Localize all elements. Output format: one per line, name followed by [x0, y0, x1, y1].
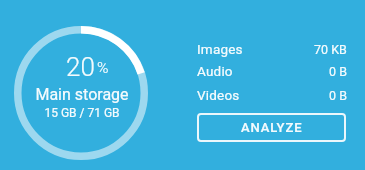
other: Storage used: 20 percent — [14, 26, 148, 160]
staticText: Main storage — [0, 85, 164, 104]
staticText: Videos — [197, 87, 240, 103]
button[interactable]: Images — [197, 40, 347, 58]
staticText: % — [97, 59, 109, 77]
staticText: 20 — [66, 52, 95, 82]
staticText: 0 B — [329, 64, 347, 79]
button[interactable]: Videos — [197, 86, 347, 104]
staticText: ANALYZE — [241, 120, 303, 135]
staticText: 15 GB / 71 GB — [0, 106, 164, 120]
staticText: Images — [197, 41, 243, 57]
staticText: 0 B — [329, 88, 347, 103]
staticText: Audio — [197, 63, 233, 79]
staticText: 70 KB — [314, 42, 347, 57]
button[interactable]: Audio — [197, 62, 347, 80]
button[interactable]: ANALYZE — [197, 113, 346, 142]
